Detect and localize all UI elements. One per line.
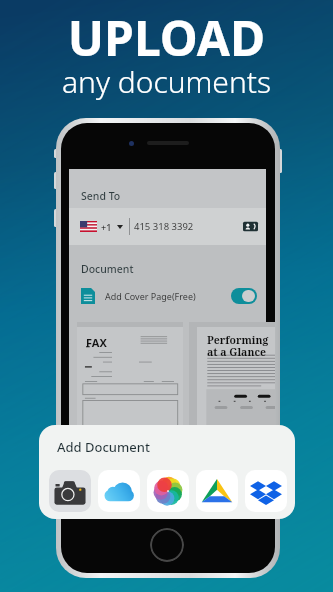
button[interactable]: +1 bbox=[69, 208, 266, 245]
staticText: Add Document bbox=[57, 438, 150, 456]
other: Camera bbox=[49, 470, 91, 512]
button[interactable]: Camera bbox=[49, 470, 91, 512]
other: Photos bbox=[147, 470, 189, 512]
button[interactable]: Add Cover Page(Free) bbox=[81, 281, 257, 311]
staticText: UPLOAD bbox=[0, 5, 333, 70]
staticText: Send To bbox=[81, 189, 121, 203]
button[interactable]: Choose contact bbox=[243, 221, 258, 232]
other: Dropbox bbox=[245, 470, 287, 512]
button[interactable]: Photos bbox=[147, 470, 189, 512]
staticText: FAX bbox=[86, 335, 107, 350]
other: Google Drive bbox=[196, 470, 238, 512]
staticText: +1 bbox=[101, 221, 112, 233]
staticText: Document bbox=[81, 262, 134, 276]
staticText: Add Cover Page(Free) bbox=[105, 290, 196, 302]
button[interactable]: Dropbox bbox=[245, 470, 287, 512]
staticText: Performing at a Glance bbox=[207, 333, 269, 359]
button[interactable]: iCloud bbox=[98, 470, 140, 512]
staticText: 415 318 3392 bbox=[134, 220, 194, 233]
other: iCloud bbox=[98, 470, 140, 512]
staticText: any documents bbox=[0, 61, 333, 102]
button[interactable]: Google Drive bbox=[196, 470, 238, 512]
